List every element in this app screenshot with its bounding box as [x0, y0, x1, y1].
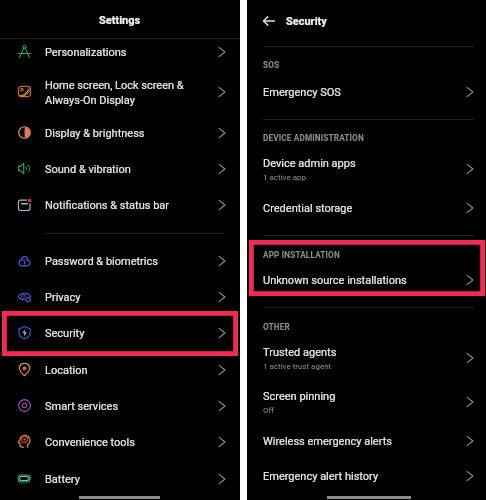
button[interactable]: Unknown source installations	[247, 262, 486, 298]
staticText: Smart services	[45, 400, 119, 413]
staticText: APP INSTALLATION	[263, 250, 340, 260]
button[interactable]: Smart services	[0, 388, 240, 424]
button[interactable]: Wireless emergency alerts	[247, 423, 486, 459]
staticText: 1 active trust agent	[263, 362, 332, 371]
button[interactable]: Settings	[0, 0, 240, 37]
button[interactable]: Trusted agents	[247, 334, 486, 385]
button[interactable]: Privacy	[0, 279, 240, 315]
button[interactable]: Emergency alert history	[247, 458, 486, 494]
staticText: Password & biometrics	[45, 255, 158, 268]
staticText: Unknown source installations	[263, 274, 407, 287]
staticText: Notifications & status bar	[45, 199, 170, 212]
staticText: OTHER	[263, 322, 290, 332]
button[interactable]: Back	[256, 8, 281, 33]
button[interactable]: Convenience tools	[0, 424, 240, 460]
button[interactable]: Screen pinning	[247, 378, 486, 429]
staticText: Display & brightness	[45, 127, 145, 140]
staticText: Off	[263, 406, 275, 415]
staticText: Settings	[99, 14, 141, 27]
staticText: DEVICE ADMINISTRATION	[263, 133, 364, 143]
button[interactable]: Emergency SOS	[247, 74, 486, 110]
staticText: Device admin apps	[263, 157, 356, 170]
button[interactable]: Credential storage	[247, 190, 486, 226]
button[interactable]: Location	[0, 352, 240, 388]
staticText: Emergency SOS	[263, 86, 341, 99]
button[interactable]: Password & biometrics	[0, 243, 240, 279]
staticText: Emergency alert history	[263, 470, 379, 483]
staticText: SOS	[263, 60, 280, 70]
staticText: Screen pinning	[263, 390, 336, 403]
staticText: Always-On Display	[45, 94, 135, 107]
staticText: Sound & vibration	[45, 163, 131, 176]
staticText: Wireless emergency alerts	[263, 435, 392, 448]
staticText: Privacy	[45, 291, 81, 304]
staticText: Location	[45, 364, 88, 377]
staticText: Security	[286, 15, 327, 28]
staticText: Personalizations	[45, 46, 127, 59]
button[interactable]: Display & brightness	[0, 115, 240, 151]
button[interactable]: Notifications & status bar	[0, 187, 240, 223]
button[interactable]: Personalizations	[0, 34, 240, 70]
button[interactable]: Security	[0, 315, 240, 351]
button[interactable]: Device admin apps	[247, 145, 486, 196]
button[interactable]: Sound & vibration	[0, 151, 240, 187]
staticText: Convenience tools	[45, 436, 135, 449]
staticText: Trusted agents	[263, 346, 337, 359]
staticText: Security	[45, 327, 85, 340]
staticText: 1 active app	[263, 173, 306, 182]
button[interactable]: Home screen, Lock screen &	[0, 67, 240, 118]
staticText: Home screen, Lock screen &	[45, 79, 184, 92]
staticText: Battery	[45, 473, 80, 486]
button[interactable]: Battery	[0, 461, 240, 497]
staticText: Credential storage	[263, 202, 353, 215]
